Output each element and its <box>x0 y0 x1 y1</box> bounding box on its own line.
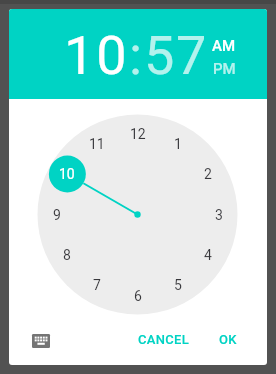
staticText: PM <box>213 60 236 78</box>
staticText: 10 <box>64 24 129 87</box>
staticText: 2 <box>204 166 212 182</box>
staticText: 9 <box>53 207 61 223</box>
button[interactable]: AM <box>204 36 244 56</box>
staticText: 8 <box>63 247 71 263</box>
button[interactable]: OK <box>204 321 252 357</box>
button[interactable]: CANCEL <box>132 321 196 357</box>
staticText: CANCEL <box>138 332 190 347</box>
staticText: 5 <box>174 277 182 293</box>
button[interactable] <box>20 323 62 359</box>
staticText: 1 <box>174 136 182 152</box>
staticText: 10 <box>59 166 75 182</box>
staticText: 12 <box>130 126 146 142</box>
staticText: 3 <box>215 207 223 223</box>
staticText: 4 <box>204 247 212 263</box>
staticText: 7 <box>93 277 101 293</box>
button[interactable]: PM <box>204 59 244 79</box>
staticText: AM <box>212 37 236 55</box>
staticText: :57 <box>129 24 209 87</box>
staticText: OK <box>219 332 237 347</box>
staticText: 6 <box>134 288 142 304</box>
staticText: 11 <box>89 136 105 152</box>
